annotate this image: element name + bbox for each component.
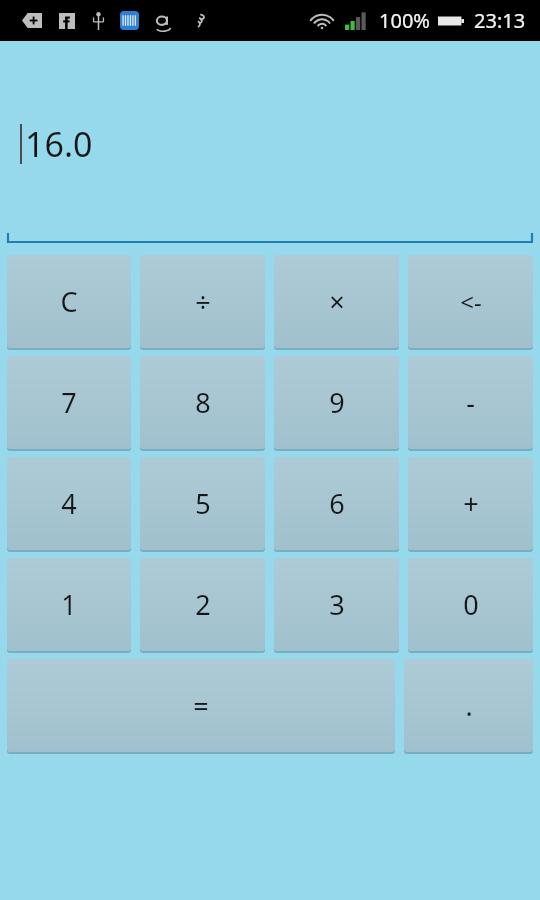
staticText: 1	[61, 586, 77, 623]
staticText: .	[465, 687, 473, 724]
staticText: 6	[329, 485, 345, 522]
staticText: 0	[463, 586, 479, 623]
button[interactable]: 8	[140, 356, 265, 449]
staticText: 100%	[379, 7, 430, 34]
button[interactable]: 9	[274, 356, 399, 449]
staticText: 8	[195, 384, 211, 421]
staticText: 16.0	[25, 121, 93, 167]
staticText: 7	[61, 384, 77, 421]
button[interactable]: 7	[7, 356, 131, 449]
staticText: 9	[329, 384, 345, 421]
staticText: <-	[460, 285, 482, 318]
button[interactable]: 1	[7, 558, 131, 651]
button[interactable]: .	[404, 659, 533, 752]
staticText: 3	[329, 586, 345, 623]
staticText: -	[466, 384, 475, 421]
button[interactable]: 0	[408, 558, 533, 651]
button[interactable]: <-	[408, 255, 533, 348]
staticText: ÷	[195, 283, 211, 320]
button[interactable]: =	[7, 659, 395, 752]
staticText: +	[463, 485, 479, 522]
staticText: 5	[195, 485, 211, 522]
button[interactable]: 5	[140, 457, 265, 550]
button[interactable]: 3	[274, 558, 399, 651]
button[interactable]: 4	[7, 457, 131, 550]
button[interactable]: +	[408, 457, 533, 550]
staticText: 2	[195, 586, 211, 623]
staticText: ×	[329, 283, 345, 320]
button[interactable]: -	[408, 356, 533, 449]
staticText: =	[193, 687, 209, 724]
staticText: 4	[61, 485, 77, 522]
button[interactable]: 2	[140, 558, 265, 651]
button[interactable]: 6	[274, 457, 399, 550]
button[interactable]: ÷	[140, 255, 265, 348]
staticText: C	[60, 283, 78, 320]
button[interactable]: C	[7, 255, 131, 348]
staticText: 23:13	[474, 7, 526, 34]
button[interactable]: ×	[274, 255, 399, 348]
